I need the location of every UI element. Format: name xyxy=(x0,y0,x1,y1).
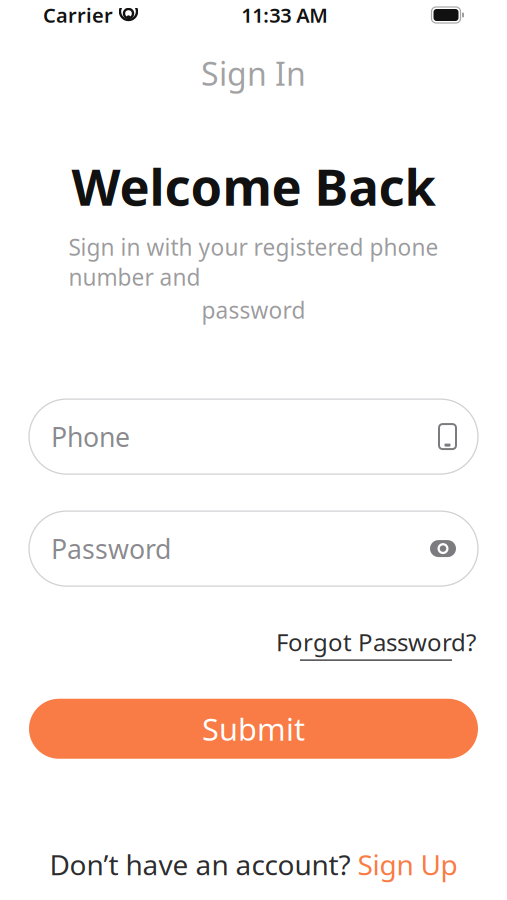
staticText: Password xyxy=(51,531,171,566)
staticText: password xyxy=(201,295,305,325)
staticText: Phone xyxy=(51,419,130,454)
button[interactable]: Phone xyxy=(29,399,478,474)
button[interactable]: Submit xyxy=(29,699,478,759)
button[interactable]: Forgot Password? xyxy=(276,626,476,661)
staticText: Sign Up xyxy=(357,846,457,883)
staticText: Carrier xyxy=(43,2,113,28)
button[interactable]: Sign Up xyxy=(357,846,457,883)
staticText: 11:33 AM xyxy=(241,2,328,28)
staticText: Forgot Password? xyxy=(276,626,476,658)
staticText: Submit xyxy=(202,708,305,749)
button[interactable]: Password xyxy=(29,511,478,586)
staticText: Welcome Back xyxy=(71,152,435,220)
staticText: Sign In xyxy=(201,52,306,94)
staticText: Sign in with your registered phone numbe… xyxy=(68,232,438,292)
staticText: Don’t have an account? xyxy=(49,846,350,883)
